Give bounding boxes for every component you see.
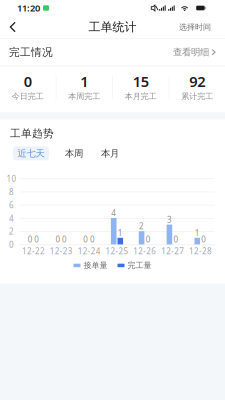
staticText: 12-26 [133, 246, 156, 256]
button[interactable]: 本周 [61, 146, 87, 160]
button[interactable]: 查看明细 [173, 46, 216, 58]
staticText: 4 [111, 208, 116, 218]
staticText: 2 [9, 226, 14, 237]
staticText: 12-28 [189, 246, 212, 256]
button[interactable]: 本月 [97, 146, 123, 160]
staticText: 0 [9, 239, 14, 250]
staticText: 12-22 [22, 246, 45, 256]
staticText: 3 [167, 214, 172, 225]
staticText: 0 [62, 234, 67, 245]
staticText: 0 [24, 72, 32, 91]
staticText: 15 [133, 72, 149, 91]
staticText: 12-27 [161, 246, 184, 256]
staticText: 0 [201, 234, 206, 245]
staticText: 完工情况 [9, 46, 53, 59]
staticText: 12-25 [105, 246, 128, 256]
staticText: 0 [34, 234, 39, 245]
staticText: 1 [80, 72, 88, 91]
staticText: 12-24 [78, 246, 101, 256]
staticText: 92 [189, 72, 205, 91]
staticText: 完工量 [127, 260, 151, 270]
staticText: 工单趋势 [10, 127, 54, 140]
button[interactable]: 选择时间 [179, 16, 225, 38]
staticText: 累计完工 [181, 91, 213, 101]
button[interactable]: 近七天 [13, 146, 49, 160]
staticText: 近七天 [17, 148, 44, 159]
staticText: 10 [6, 173, 16, 184]
staticText: 6 [9, 200, 14, 210]
staticText: 查看明细 [173, 46, 209, 58]
staticText: 0 [90, 234, 95, 245]
staticText: 0 [28, 234, 33, 245]
staticText: 2 [139, 221, 144, 231]
staticText: 选择时间 [179, 22, 211, 32]
staticText: 本月完工 [125, 91, 157, 101]
staticText: 1 [118, 227, 123, 238]
button[interactable]: 返回 [0, 16, 26, 38]
staticText: 工单统计 [88, 20, 136, 34]
staticText: 0 [83, 234, 88, 245]
staticText: 0 [173, 234, 178, 245]
staticText: 接单量 [83, 260, 107, 270]
staticText: 8 [9, 187, 14, 197]
staticText: 本月 [101, 148, 119, 159]
staticText: 12-23 [50, 246, 73, 256]
staticText: 11:20 [17, 2, 40, 14]
staticText: 4 [9, 213, 14, 224]
staticText: 本周完工 [68, 91, 100, 101]
staticText: 1 [195, 227, 200, 238]
staticText: 0 [55, 234, 60, 245]
staticText: 本周 [65, 148, 83, 159]
staticText: 今日完工 [12, 91, 44, 101]
staticText: 0 [146, 234, 151, 245]
